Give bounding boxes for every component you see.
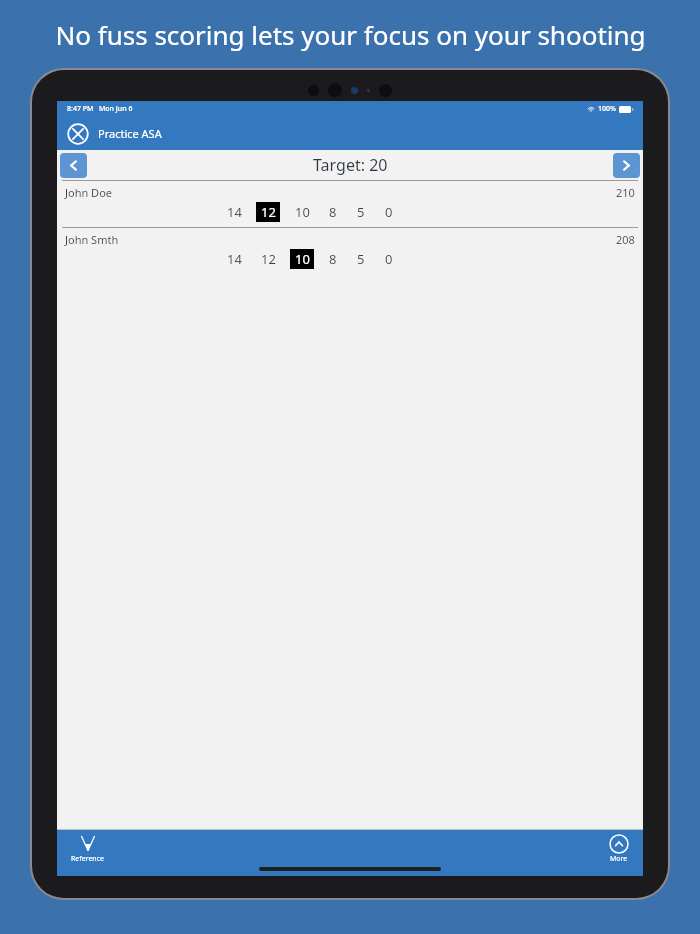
button[interactable]: 0 <box>380 202 398 222</box>
button[interactable]: 12 <box>256 249 280 269</box>
button[interactable]: 5 <box>352 249 370 269</box>
button[interactable]: 8 <box>324 249 342 269</box>
staticText: More <box>610 854 628 864</box>
button[interactable]: John Doe <box>57 180 643 227</box>
staticText: John Doe <box>65 185 113 200</box>
staticText: 8 <box>329 203 337 221</box>
button[interactable]: 0 <box>380 249 398 269</box>
staticText: 210 <box>616 185 635 200</box>
staticText: Reference <box>71 854 104 864</box>
staticText: 10 <box>295 250 310 268</box>
button[interactable]: 10 <box>290 202 314 222</box>
staticText: 8 <box>329 250 337 268</box>
staticText: 8:47 PM Mon Jun 6 <box>67 104 133 114</box>
button[interactable]: 10 <box>290 249 314 269</box>
button[interactable]: 14 <box>222 249 246 269</box>
staticText: Practice ASA <box>98 126 162 141</box>
staticText: 0 <box>385 203 393 221</box>
staticText: 14 <box>227 250 242 268</box>
staticText: John Smth <box>65 232 119 247</box>
staticText: 100% <box>598 104 616 114</box>
staticText: 12 <box>261 250 276 268</box>
staticText: 5 <box>357 250 365 268</box>
button[interactable]: Close <box>63 119 93 149</box>
button[interactable]: 8 <box>324 202 342 222</box>
button[interactable]: 14 <box>222 202 246 222</box>
staticText: 208 <box>616 232 635 247</box>
staticText: 10 <box>295 203 310 221</box>
staticText: 12 <box>261 203 276 221</box>
button[interactable]: 12 <box>256 202 280 222</box>
button[interactable]: 5 <box>352 202 370 222</box>
button[interactable]: Next target <box>613 153 640 178</box>
staticText: 5 <box>357 203 365 221</box>
button[interactable]: Reference <box>71 834 104 864</box>
staticText: Target: 20 <box>313 154 388 176</box>
staticText: 14 <box>227 203 242 221</box>
button[interactable]: Previous target <box>60 153 87 178</box>
button[interactable]: More <box>609 834 629 864</box>
staticText: 0 <box>385 250 393 268</box>
button[interactable]: John Smth <box>57 227 643 274</box>
staticText: No fuss scoring lets your focus on your … <box>55 17 646 52</box>
